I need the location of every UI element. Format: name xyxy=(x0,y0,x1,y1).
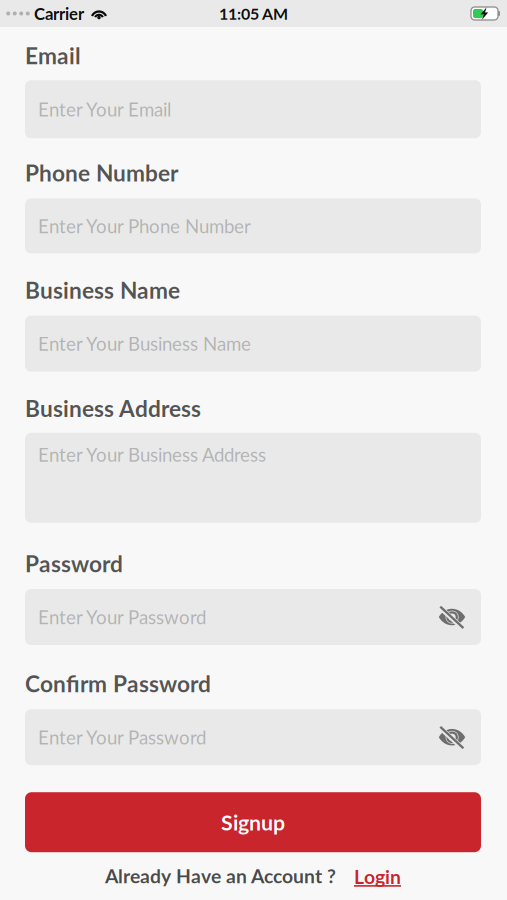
staticText: Enter Your Password xyxy=(38,606,206,628)
staticText: Signup xyxy=(221,809,285,835)
button[interactable]: Enter Your Phone Number xyxy=(25,198,481,253)
staticText: Enter Your Business Name xyxy=(38,332,251,355)
staticText: Already Have an Account ? xyxy=(105,864,336,887)
staticText: Login xyxy=(354,865,401,888)
staticText: Business Name xyxy=(25,276,180,304)
staticText: Carrier xyxy=(34,3,84,23)
staticText: Enter Your Email xyxy=(38,98,171,120)
button[interactable]: Signup xyxy=(25,792,481,852)
staticText: Email xyxy=(25,42,81,69)
button[interactable]: Enter Your Business Address xyxy=(25,433,481,523)
button[interactable]: Enter Your Business Name xyxy=(25,316,481,372)
button[interactable]: Enter Your Password xyxy=(25,589,481,645)
button[interactable]: Show password xyxy=(430,709,474,765)
staticText: Phone Number xyxy=(25,159,178,186)
staticText: Confirm Password xyxy=(25,670,211,697)
staticText: Password xyxy=(25,550,123,577)
button[interactable]: Enter Your Password xyxy=(25,709,481,765)
staticText: Enter Your Phone Number xyxy=(38,215,251,237)
staticText: Business Address xyxy=(25,395,201,422)
staticText: Enter Your Password xyxy=(38,726,206,748)
button[interactable]: Show password xyxy=(430,589,474,645)
button[interactable]: Login xyxy=(354,865,401,887)
button[interactable]: Enter Your Email xyxy=(25,80,481,138)
staticText: Enter Your Business Address xyxy=(38,443,266,466)
staticText: 11:05 AM xyxy=(219,4,288,23)
